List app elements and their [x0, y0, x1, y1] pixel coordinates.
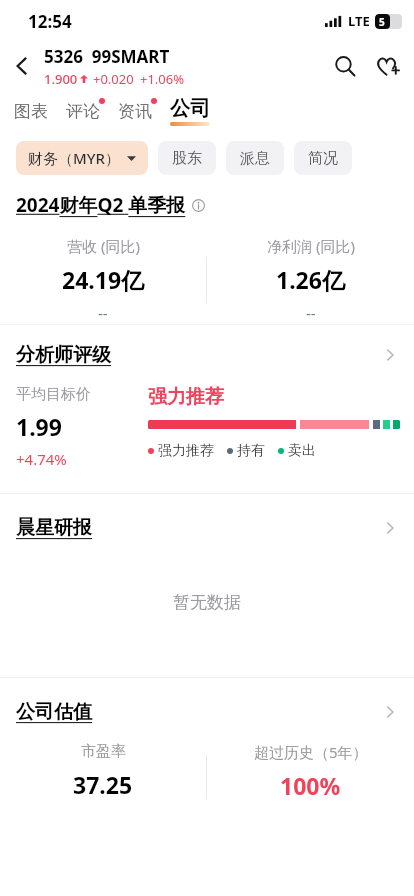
staticText: 分析师评级 — [16, 343, 382, 367]
staticText: 市盈率 — [81, 742, 126, 761]
staticText: 营收 (同比) — [67, 236, 140, 256]
staticText: 强力推荐 — [158, 442, 214, 460]
staticText: 1.26亿 — [276, 264, 345, 295]
staticText: 1.900 — [44, 70, 78, 88]
button[interactable]: Back — [0, 44, 44, 88]
staticText: 股东 — [172, 149, 202, 168]
staticText: 37.25 — [73, 769, 133, 800]
staticText: +1.06% — [140, 70, 185, 88]
staticText: +4.74% — [16, 449, 67, 469]
staticText: 简况 — [308, 149, 338, 168]
staticText: 派息 — [240, 149, 270, 168]
staticText: 净利润 (同比) — [267, 236, 355, 256]
staticText: 平均目标价 — [16, 385, 91, 404]
staticText: 暂无数据 — [173, 592, 241, 613]
staticText: 12:54 — [28, 10, 72, 33]
staticText: 晨星研报 — [16, 516, 382, 540]
staticText: 资讯 — [118, 101, 152, 122]
staticText: +0.020 — [93, 70, 134, 88]
button[interactable]: Search — [322, 43, 368, 89]
staticText: 持有 — [237, 442, 265, 460]
staticText: 超过历史（5年） — [254, 742, 368, 762]
button[interactable]: 图表 — [14, 101, 48, 122]
button[interactable]: 晨星研报 — [0, 516, 414, 540]
staticText: 财务（MYR） — [28, 148, 121, 168]
staticText: 5 — [379, 15, 385, 29]
staticText: -- — [98, 303, 108, 323]
staticText: 卖出 — [288, 442, 316, 460]
staticText: -- — [306, 303, 316, 323]
button[interactable]: 公司估值 — [0, 700, 414, 724]
staticText: 公司估值 — [16, 700, 382, 724]
staticText: 24.19亿 — [62, 264, 145, 295]
staticText: 2024财年Q2 单季报 — [16, 192, 186, 218]
button[interactable]: 分析师评级 — [0, 343, 414, 367]
button[interactable]: 公司 — [170, 96, 210, 126]
button[interactable]: 简况 — [294, 141, 352, 175]
staticText: 5326 99SMART — [44, 45, 170, 68]
staticText: 100% — [280, 770, 341, 801]
staticText: LTE — [348, 12, 370, 30]
button[interactable]: 股东 — [158, 141, 216, 175]
button[interactable]: 评论 — [66, 101, 100, 122]
button[interactable]: 派息 — [226, 141, 284, 175]
button[interactable]: 资讯 — [118, 101, 152, 122]
staticText: 强力推荐 — [148, 385, 224, 409]
staticText: 公司 — [170, 96, 210, 121]
staticText: 1.99 — [16, 411, 62, 442]
button[interactable]: 财务（MYR） — [16, 141, 148, 175]
staticText: 图表 — [14, 101, 48, 122]
button[interactable]: Add to watchlist — [368, 43, 406, 89]
staticText: 评论 — [66, 101, 100, 122]
